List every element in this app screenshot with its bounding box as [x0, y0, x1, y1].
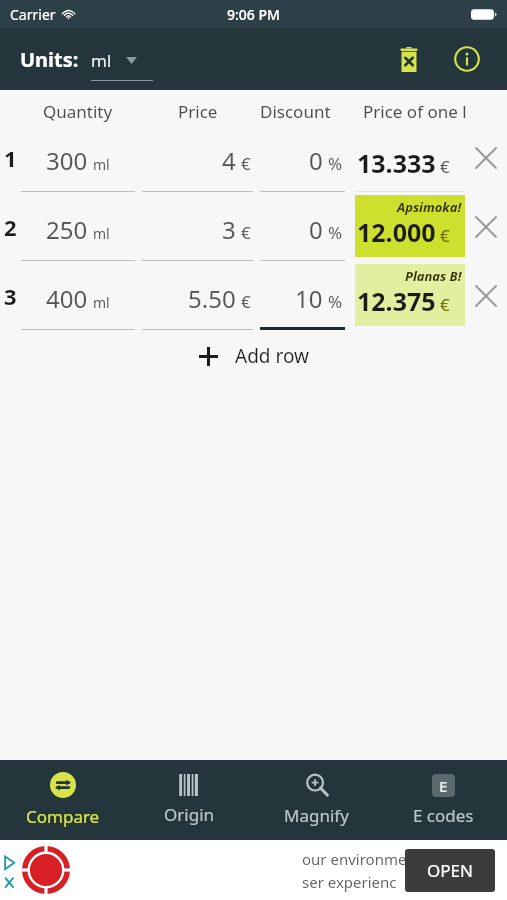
button[interactable]: 4: [142, 123, 253, 192]
staticText: Planas B!: [405, 267, 462, 285]
staticText: 13.333: [357, 146, 436, 180]
button[interactable]: Remove row 2: [465, 192, 507, 261]
button[interactable]: Remove row 1: [465, 123, 507, 192]
button[interactable]: Info: [445, 37, 489, 81]
button[interactable]: E: [380, 760, 507, 840]
staticText: %: [328, 152, 343, 175]
staticText: €: [241, 290, 251, 313]
staticText: €: [440, 293, 450, 316]
staticText: 5.50: [188, 282, 236, 315]
staticText: €: [440, 155, 450, 178]
staticText: Magnify: [284, 804, 349, 827]
staticText: Apsimoka!: [397, 198, 462, 216]
button[interactable]: Add row: [181, 335, 327, 377]
staticText: €: [440, 224, 450, 247]
button[interactable]: OPEN: [405, 849, 495, 892]
button[interactable]: Clear all: [387, 37, 431, 81]
staticText: 300: [46, 144, 88, 177]
staticText: Price of one l: [363, 100, 467, 123]
staticText: 12.000: [357, 215, 436, 249]
button[interactable]: Origin: [126, 760, 253, 840]
staticText: 400: [46, 282, 88, 315]
staticText: Units:: [20, 46, 79, 73]
staticText: 4: [222, 144, 236, 177]
staticText: €: [241, 221, 251, 244]
button[interactable]: 0: [260, 123, 345, 192]
staticText: ml: [93, 224, 110, 243]
button[interactable]: 3: [142, 192, 253, 261]
button[interactable]: Magnify: [253, 760, 380, 840]
staticText: 0: [309, 144, 323, 177]
staticText: Quantity: [43, 100, 113, 123]
staticText: Origin: [164, 803, 215, 826]
staticText: 2: [4, 212, 17, 242]
button[interactable]: Compare: [0, 760, 126, 840]
button[interactable]: 5.50: [142, 261, 253, 330]
button[interactable]: Remove row 3: [465, 261, 507, 330]
staticText: Carrier: [10, 5, 56, 24]
staticText: 3: [222, 213, 236, 246]
staticText: Discount %: [260, 100, 345, 123]
staticText: %: [328, 221, 343, 244]
button[interactable]: 400: [21, 261, 135, 330]
staticText: 0: [309, 213, 323, 246]
staticText: 12.375: [357, 284, 436, 318]
staticText: 10: [295, 282, 323, 315]
staticText: ser experienc: [302, 872, 397, 892]
staticText: ml: [93, 293, 110, 312]
staticText: Price: [178, 100, 218, 123]
staticText: 9:06 PM: [227, 5, 280, 24]
staticText: 3: [4, 281, 17, 311]
staticText: €: [241, 152, 251, 175]
button[interactable]: 300: [21, 123, 135, 192]
staticText: 1: [4, 143, 17, 173]
staticText: ml: [91, 49, 112, 72]
button[interactable]: 0: [260, 192, 345, 261]
staticText: OPEN: [427, 859, 473, 882]
staticText: Add row: [235, 343, 309, 369]
staticText: E: [439, 776, 448, 796]
button[interactable]: ml: [91, 47, 163, 72]
staticText: E codes: [413, 804, 474, 827]
staticText: %: [328, 290, 343, 313]
staticText: ml: [93, 155, 110, 174]
staticText: 250: [46, 213, 88, 246]
button[interactable]: 10: [260, 261, 345, 330]
staticText: Compare: [26, 805, 100, 828]
staticText: our environme: [302, 849, 407, 869]
button[interactable]: 250: [21, 192, 135, 261]
